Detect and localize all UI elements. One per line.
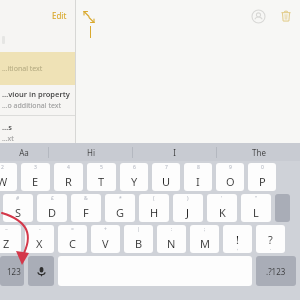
staticText: Y xyxy=(131,174,138,189)
button[interactable]: Edit xyxy=(0,0,75,31)
staticText: + xyxy=(104,226,107,233)
button[interactable]: £ xyxy=(37,194,67,222)
staticText: …viour in property xyxy=(2,89,70,99)
staticText: £ xyxy=(51,195,54,202)
staticText: ? xyxy=(268,232,273,247)
staticText: S xyxy=(15,205,22,220)
button[interactable]: 123 xyxy=(0,256,24,286)
staticText: , xyxy=(237,245,239,252)
staticText: E xyxy=(32,174,39,189)
staticText: 2 xyxy=(1,164,4,171)
button[interactable]: 4 xyxy=(54,163,83,191)
button[interactable]: 0 xyxy=(248,163,276,191)
button[interactable]: | xyxy=(124,225,153,253)
button[interactable]: …itional text xyxy=(0,52,75,85)
button[interactable]: Aa xyxy=(0,143,48,161)
staticText: 4 xyxy=(67,164,70,171)
button[interactable]: 3 xyxy=(21,163,50,191)
staticText: I xyxy=(173,147,176,158)
staticText: .?123 xyxy=(266,266,286,277)
button[interactable]: 9 xyxy=(216,163,244,191)
button[interactable]: …viour in property xyxy=(0,85,75,115)
staticText: . xyxy=(270,245,272,252)
staticText: J xyxy=(186,205,190,220)
staticText: " xyxy=(255,195,258,202)
staticText: 6 xyxy=(133,164,136,171)
staticText: …itional text xyxy=(2,64,43,74)
button[interactable]: 5 xyxy=(87,163,116,191)
staticText: H xyxy=(150,205,159,220)
button[interactable]: .?123 xyxy=(256,256,296,286)
button[interactable]: . xyxy=(256,225,285,253)
button[interactable]: 8 xyxy=(184,163,212,191)
staticText: L xyxy=(253,205,259,220)
staticText: D xyxy=(48,205,57,220)
button[interactable]: ; xyxy=(190,225,219,253)
staticText: M xyxy=(200,236,210,251)
staticText: ' xyxy=(221,195,223,202)
staticText: Edit xyxy=(52,10,67,21)
staticText: V xyxy=(102,236,109,251)
staticText: Aa xyxy=(19,147,29,158)
staticText: …xt xyxy=(2,134,14,143)
staticText: - xyxy=(39,226,41,233)
staticText: …s xyxy=(2,122,12,132)
staticText: F xyxy=(83,205,89,220)
staticText: 123 xyxy=(7,266,21,277)
button[interactable]: Delete note xyxy=(278,8,294,24)
button[interactable]: Dictate xyxy=(28,256,54,286)
button[interactable]: : xyxy=(157,225,186,253)
staticText: W xyxy=(0,174,8,189)
staticText: = xyxy=(71,226,74,233)
button[interactable]: 2 xyxy=(0,163,17,191)
staticText: ) xyxy=(187,195,189,202)
button[interactable]: - xyxy=(25,225,54,253)
button[interactable]: Share note xyxy=(250,8,266,24)
staticText: U xyxy=(162,174,171,189)
button[interactable]: 7 xyxy=(152,163,180,191)
staticText: & xyxy=(84,195,88,202)
staticText: The xyxy=(252,147,266,158)
button[interactable]: Expand note xyxy=(80,8,94,22)
staticText: B xyxy=(135,236,143,251)
staticText: ! xyxy=(236,232,239,247)
button[interactable]: ( xyxy=(139,194,169,222)
button[interactable]: I xyxy=(133,143,216,161)
staticText: * xyxy=(119,195,122,202)
button[interactable]: Hi xyxy=(49,143,132,161)
staticText: X xyxy=(36,236,43,251)
staticText: 8 xyxy=(197,164,200,171)
staticText: 5 xyxy=(100,164,103,171)
button[interactable]: # xyxy=(3,194,33,222)
staticText: Hi xyxy=(87,147,95,158)
button[interactable]: + xyxy=(91,225,120,253)
staticText: ~ xyxy=(5,226,8,233)
staticText: ; xyxy=(204,226,206,233)
staticText: N xyxy=(167,236,176,251)
staticText: ( xyxy=(153,195,155,202)
button[interactable]: …s xyxy=(0,116,75,143)
button[interactable]: ~ xyxy=(0,225,21,253)
button[interactable]: ' xyxy=(207,194,237,222)
staticText: …o additional text xyxy=(2,101,61,111)
button[interactable]: , xyxy=(223,225,252,253)
staticText: I xyxy=(196,174,200,189)
button[interactable]: ) xyxy=(173,194,203,222)
staticText: G xyxy=(116,205,125,220)
button[interactable]: Return xyxy=(275,194,290,222)
staticText: | xyxy=(137,226,140,233)
button[interactable]: = xyxy=(58,225,87,253)
staticText: 9 xyxy=(229,164,232,171)
button[interactable]: " xyxy=(241,194,271,222)
button[interactable]: The xyxy=(217,143,300,161)
button[interactable]: * xyxy=(105,194,135,222)
staticText: # xyxy=(16,195,20,202)
button[interactable]: 6 xyxy=(120,163,148,191)
staticText: R xyxy=(65,174,72,189)
staticText: T xyxy=(98,174,105,189)
staticText: P xyxy=(259,174,266,189)
button[interactable]: & xyxy=(71,194,101,222)
staticText: O xyxy=(226,174,235,189)
